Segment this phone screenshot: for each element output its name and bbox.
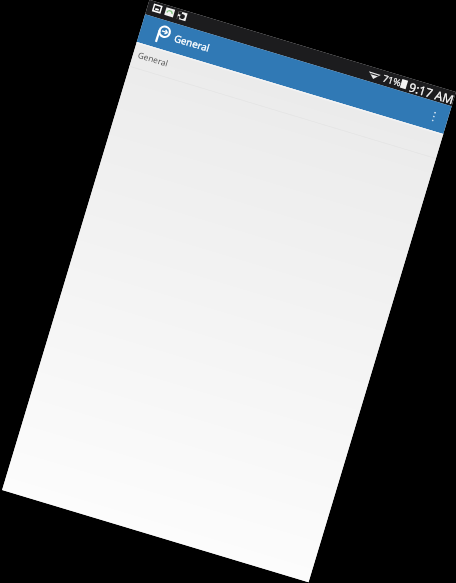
staticText: General — [137, 49, 170, 69]
staticText: 71% — [381, 71, 403, 89]
staticText: 9:17 AM — [407, 79, 456, 106]
staticText: General — [173, 32, 212, 55]
button[interactable]: More options — [423, 105, 445, 128]
